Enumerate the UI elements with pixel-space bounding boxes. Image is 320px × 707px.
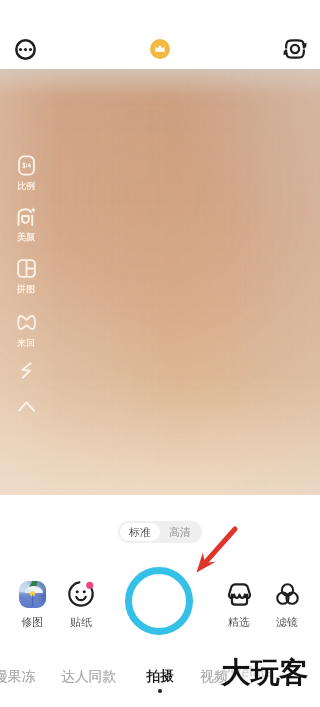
staticText: 修图 (21, 615, 43, 629)
staticText: Pixelate (222, 662, 274, 681)
button[interactable]: 视频 (198, 665, 230, 692)
staticText: 慢果冻 (0, 668, 36, 685)
staticText: 贴纸 (70, 615, 92, 629)
button[interactable]: Expand tools (13, 393, 39, 419)
staticText: 标准 (129, 525, 151, 539)
button[interactable]: More options (8, 32, 42, 66)
button[interactable]: 拍摄 (144, 665, 176, 696)
button[interactable]: Switch camera (278, 32, 312, 66)
staticText: 比例 (17, 180, 35, 191)
button[interactable]: 滤镜 (264, 579, 310, 629)
button[interactable]: 拼图 (7, 258, 45, 294)
button[interactable]: 比例 (7, 155, 45, 191)
button[interactable]: 精选 (216, 579, 262, 629)
button[interactable]: Flash (13, 357, 39, 383)
staticText: 大玩客 (221, 655, 308, 692)
staticText: 高清 (169, 525, 191, 539)
staticText: 视频 (200, 668, 228, 685)
button[interactable]: 修图 (9, 579, 55, 629)
button[interactable]: 达人同款 (59, 665, 119, 692)
staticText: 达人同款 (61, 668, 117, 685)
button[interactable]: Shutter (121, 563, 196, 638)
staticText: 拍摄 (146, 668, 174, 685)
button[interactable]: 高清 (160, 523, 200, 541)
button[interactable]: 来回 (7, 312, 45, 348)
button[interactable]: 美颜 (7, 206, 45, 242)
button[interactable]: VIP membership (143, 32, 177, 66)
staticText: 拼图 (17, 283, 35, 294)
button[interactable]: 贴纸 (58, 579, 104, 629)
button[interactable]: 标准 (120, 523, 160, 541)
staticText: 来回 (17, 337, 35, 348)
button[interactable]: 慢果冻 (0, 665, 38, 692)
staticText: 滤镜 (276, 615, 298, 629)
staticText: 美颜 (17, 231, 35, 242)
staticText: 精选 (228, 615, 250, 629)
